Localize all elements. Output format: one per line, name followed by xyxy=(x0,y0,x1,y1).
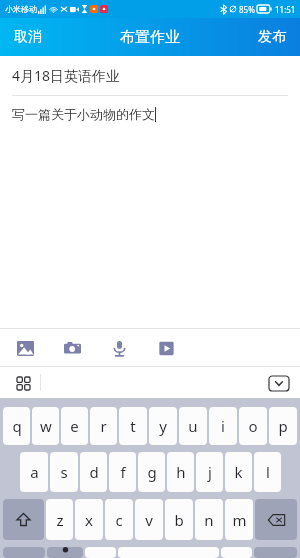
staticText: b xyxy=(174,510,184,530)
staticText: x xyxy=(85,510,93,530)
staticText: j xyxy=(208,462,212,482)
button[interactable]: p xyxy=(269,407,297,445)
staticText: v xyxy=(145,510,153,530)
button[interactable] xyxy=(221,547,252,558)
staticText: 4月18日英语作业 xyxy=(12,66,121,85)
button[interactable]: f xyxy=(109,452,136,492)
button[interactable]: m xyxy=(225,499,253,540)
button[interactable]: 4月18日英语作业 xyxy=(0,56,300,95)
button[interactable]: x xyxy=(75,499,103,540)
button[interactable]: s xyxy=(50,452,78,492)
button[interactable]: Keyboard layouts xyxy=(11,371,35,395)
staticText: w xyxy=(40,416,52,436)
staticText: 发布 xyxy=(258,28,286,46)
button[interactable]: b xyxy=(165,499,193,540)
staticText: z xyxy=(56,510,64,530)
staticText: a xyxy=(30,462,39,482)
staticText: n xyxy=(204,510,214,530)
button[interactable]: j xyxy=(196,452,223,492)
staticText: u xyxy=(188,416,198,436)
button[interactable]: Symbols xyxy=(3,547,45,558)
button[interactable]: Take photo xyxy=(59,335,85,361)
staticText: 布置作业 xyxy=(120,28,180,47)
button[interactable]: Add video xyxy=(153,335,179,361)
staticText: 取消 xyxy=(14,28,42,46)
staticText: f xyxy=(120,462,126,482)
button[interactable]: Shift xyxy=(3,499,44,540)
staticText: m xyxy=(232,510,247,530)
button[interactable]: y xyxy=(149,407,177,445)
staticText: i xyxy=(221,416,225,436)
button[interactable]: t xyxy=(119,407,147,445)
staticText: k xyxy=(234,462,243,482)
button[interactable]: h xyxy=(167,452,194,492)
staticText: d xyxy=(89,462,99,482)
button[interactable]: c xyxy=(105,499,133,540)
button[interactable]: e xyxy=(61,407,88,445)
button[interactable]: Backspace xyxy=(255,499,297,540)
staticText: p xyxy=(278,416,288,436)
button[interactable]: l xyxy=(254,452,281,492)
staticText: 小米移动 xyxy=(5,4,37,14)
button[interactable]: Switch language xyxy=(47,547,83,558)
staticText: 85% xyxy=(239,4,255,15)
button[interactable]: Add image xyxy=(12,335,38,361)
button[interactable]: q xyxy=(3,407,30,445)
button[interactable]: k xyxy=(225,452,252,492)
button[interactable]: i xyxy=(209,407,237,445)
staticText: 写一篇关于小动物的作文 xyxy=(12,106,155,122)
button[interactable]: 发布 xyxy=(244,19,300,55)
button[interactable]: Enter xyxy=(254,547,297,558)
button[interactable]: n xyxy=(195,499,223,540)
button[interactable]: r xyxy=(90,407,117,445)
button[interactable]: a xyxy=(20,452,48,492)
staticText: 11:51 xyxy=(275,4,296,15)
button[interactable]: 取消 xyxy=(0,19,56,55)
button[interactable]: Record voice xyxy=(106,335,132,361)
staticText: s xyxy=(60,462,68,482)
button[interactable]: g xyxy=(138,452,165,492)
staticText: h xyxy=(176,462,186,482)
staticText: g xyxy=(147,462,157,482)
staticText: l xyxy=(266,462,270,482)
staticText: e xyxy=(70,416,79,436)
button[interactable]: w xyxy=(32,407,59,445)
button[interactable]: Hide keyboard xyxy=(265,372,293,394)
staticText: t xyxy=(130,416,136,436)
button[interactable]: v xyxy=(135,499,163,540)
staticText: y xyxy=(159,416,167,436)
button[interactable]: o xyxy=(239,407,267,445)
staticText: o xyxy=(248,416,258,436)
button[interactable]: u xyxy=(179,407,207,445)
button[interactable]: z xyxy=(46,499,73,540)
button[interactable]: Space xyxy=(118,547,219,558)
staticText: q xyxy=(12,416,22,436)
button[interactable] xyxy=(85,547,116,558)
staticText: c xyxy=(115,510,123,530)
button[interactable]: d xyxy=(80,452,107,492)
staticText: r xyxy=(100,416,107,436)
